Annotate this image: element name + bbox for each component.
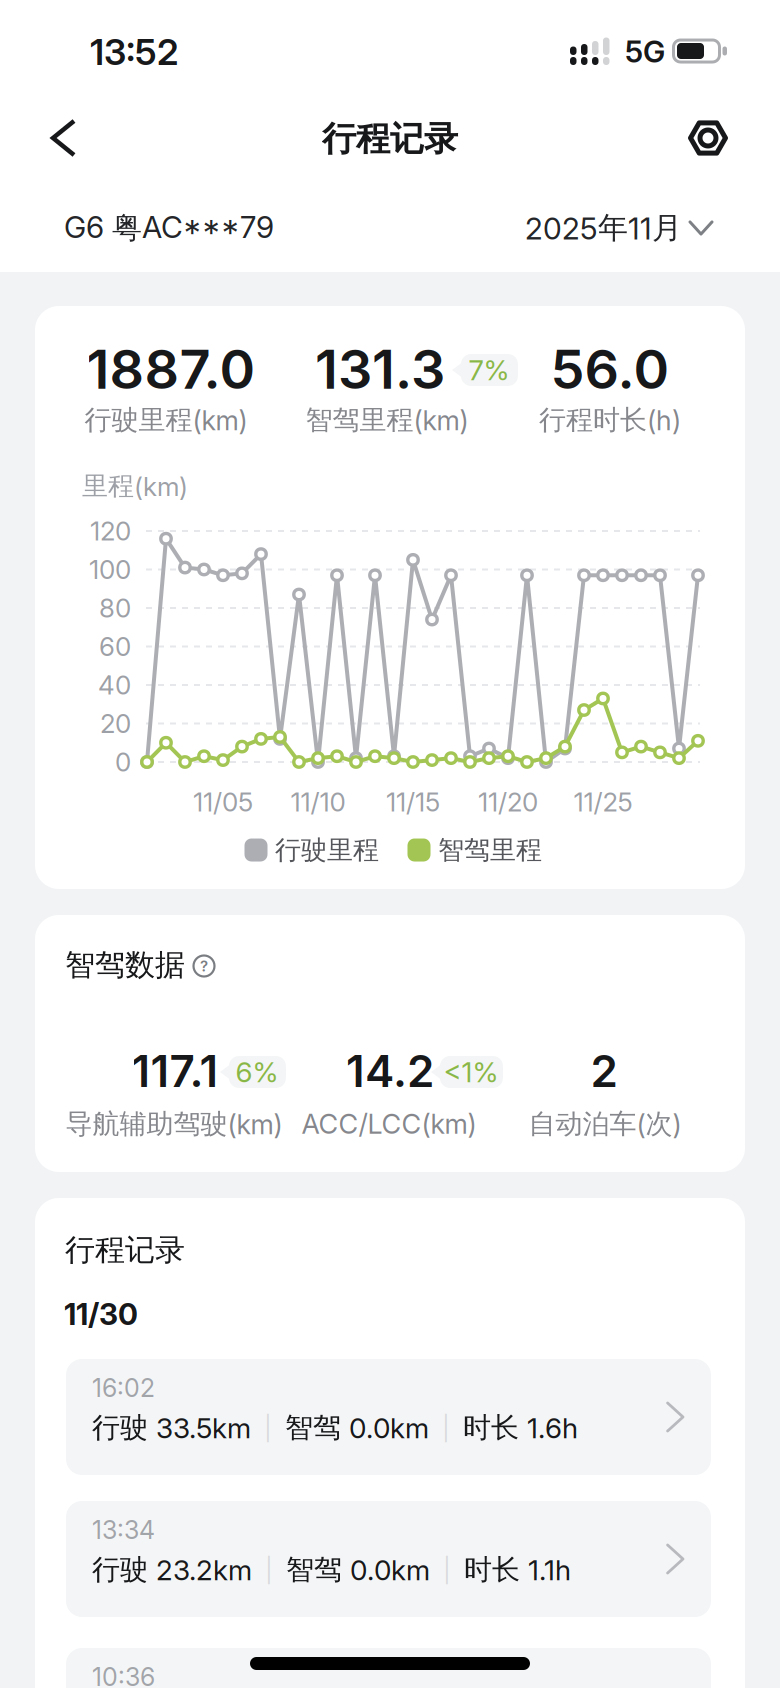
staticText: 5G — [625, 33, 665, 70]
staticText: 时长 1.6h — [463, 1410, 578, 1445]
staticText: 11/25 — [573, 786, 632, 818]
staticText: 117.1 — [131, 1044, 218, 1098]
staticText: 6% — [235, 1055, 278, 1089]
staticText: <1% — [443, 1055, 498, 1089]
staticText: 智驾 0.0km — [285, 1410, 429, 1445]
staticText: 13:52 — [90, 30, 178, 74]
staticText: 智驾里程(km) — [305, 403, 468, 437]
button[interactable]: 10:36 — [66, 1648, 711, 1688]
staticText: 56.0 — [550, 336, 669, 402]
staticText: 行驶 33.5km — [92, 1410, 251, 1445]
staticText: ACC/LCC(km) — [301, 1108, 476, 1140]
staticText: 行程记录 — [322, 118, 458, 160]
staticText: 智驾里程 — [438, 834, 542, 866]
button[interactable]: 返回 — [42, 116, 86, 160]
staticText: 14.2 — [346, 1044, 434, 1098]
staticText: 行驶里程 — [275, 834, 379, 866]
staticText: 16:02 — [92, 1373, 155, 1403]
staticText: 11/10 — [290, 786, 345, 818]
staticText: 11/05 — [193, 786, 253, 818]
staticText: 智驾数据 — [65, 946, 185, 984]
button[interactable]: 设置 — [686, 116, 730, 160]
staticText: 131.3 — [315, 336, 445, 402]
staticText: 60 — [99, 631, 131, 662]
staticText: 0 — [115, 746, 131, 778]
staticText: 11/20 — [478, 786, 538, 818]
staticText: G6 粤AC***79 — [64, 209, 274, 247]
staticText: | — [265, 1555, 273, 1584]
staticText: 7% — [468, 353, 509, 387]
staticText: 13:34 — [92, 1515, 155, 1545]
staticText: 10:36 — [92, 1662, 155, 1688]
staticText: 导航辅助驾驶(km) — [65, 1107, 282, 1141]
staticText: | — [443, 1555, 451, 1584]
staticText: 自动泊车(次) — [528, 1107, 681, 1141]
staticText: 100 — [89, 554, 131, 585]
staticText: 2 — [590, 1044, 617, 1098]
staticText: 80 — [99, 592, 131, 624]
staticText: 11/30 — [64, 1296, 138, 1332]
staticText: ? — [200, 957, 208, 975]
staticText: 11/15 — [386, 786, 440, 818]
staticText: 里程(km) — [82, 470, 188, 502]
button[interactable]: 2025年11月 — [452, 209, 712, 247]
staticText: 2025年11月 — [525, 209, 682, 247]
staticText: | — [264, 1413, 272, 1442]
staticText: 行驶 23.2km — [92, 1552, 252, 1587]
staticText: 时长 1.1h — [464, 1552, 571, 1587]
button[interactable]: 智驾数据说明 — [192, 954, 216, 978]
button[interactable]: 13:34 — [66, 1501, 711, 1617]
staticText: 40 — [98, 669, 131, 701]
staticText: | — [442, 1413, 450, 1442]
staticText: 1887.0 — [86, 336, 255, 402]
button[interactable]: 16:02 — [66, 1359, 711, 1475]
staticText: 行程记录 — [65, 1231, 185, 1269]
staticText: 20 — [100, 708, 131, 739]
staticText: 行驶里程(km) — [84, 403, 247, 437]
staticText: 120 — [90, 515, 131, 547]
staticText: 智驾 0.0km — [286, 1552, 430, 1587]
staticText: 行程时长(h) — [539, 403, 681, 437]
